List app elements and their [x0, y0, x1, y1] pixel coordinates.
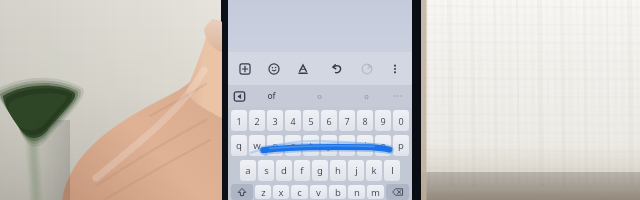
staticText: v [316, 186, 321, 199]
button[interactable]: 0 [393, 110, 409, 131]
staticText: j [355, 164, 358, 177]
button[interactable]: y [321, 135, 337, 156]
button[interactable]: More options [385, 59, 405, 79]
staticText: s [264, 164, 269, 177]
staticText: b [335, 186, 341, 199]
button[interactable]: Undo [327, 59, 347, 79]
staticText: t [309, 139, 313, 152]
button[interactable]: Stickers [264, 59, 284, 79]
button[interactable]: o [343, 85, 390, 107]
staticText: 2 [254, 115, 260, 127]
staticText: n [354, 186, 360, 199]
staticText: x [278, 186, 284, 199]
button[interactable]: Shift [231, 184, 253, 200]
staticText: r [291, 139, 295, 152]
button[interactable]: c [291, 185, 308, 199]
staticText: w [253, 139, 261, 152]
staticText: h [335, 164, 341, 177]
button[interactable]: 4 [285, 110, 301, 131]
button[interactable]: h [330, 160, 346, 181]
button[interactable]: of [246, 85, 296, 107]
button[interactable]: i [357, 135, 373, 156]
button[interactable]: Insert [235, 59, 255, 79]
button[interactable]: w [249, 135, 265, 156]
staticText: z [261, 186, 266, 199]
button[interactable]: j [348, 160, 364, 181]
staticText: 5 [308, 115, 314, 127]
button[interactable]: 3 [267, 110, 283, 131]
button[interactable]: 7 [339, 110, 355, 131]
button[interactable]: l [384, 160, 400, 181]
staticText: u [344, 139, 350, 152]
button[interactable]: a [240, 160, 256, 181]
button[interactable]: f [294, 160, 310, 181]
staticText: p [398, 139, 404, 152]
button[interactable]: n [348, 185, 365, 199]
staticText: y [327, 139, 332, 152]
staticText: l [391, 164, 394, 177]
button[interactable]: v [310, 185, 327, 199]
button[interactable]: 1 [231, 110, 247, 131]
button[interactable]: Backspace [386, 184, 409, 200]
button[interactable]: o [296, 85, 343, 107]
staticText: a [245, 164, 251, 177]
staticText: 6 [326, 115, 332, 127]
staticText: 0 [398, 115, 404, 127]
staticText: o [317, 91, 322, 101]
staticText: m [371, 186, 380, 199]
button[interactable]: 9 [375, 110, 391, 131]
button[interactable]: u [339, 135, 355, 156]
button[interactable]: q [231, 135, 247, 156]
staticText: 8 [362, 115, 368, 127]
staticText: e [272, 139, 278, 152]
button[interactable]: x [273, 185, 289, 199]
staticText: q [236, 139, 242, 152]
button[interactable]: s [258, 160, 274, 181]
button[interactable]: g [312, 160, 328, 181]
staticText: g [317, 164, 323, 177]
staticText: f [300, 164, 304, 177]
staticText: of [267, 90, 276, 102]
staticText: 1 [236, 115, 242, 127]
staticText: k [371, 164, 377, 177]
staticText: c [297, 186, 302, 199]
button[interactable]: 2 [249, 110, 265, 131]
staticText: 4 [290, 115, 296, 127]
button[interactable]: z [255, 185, 271, 199]
button[interactable]: o [375, 135, 391, 156]
button[interactable]: e [267, 135, 283, 156]
staticText: o [380, 139, 386, 152]
button[interactable]: Format text [293, 59, 313, 79]
staticText: d [281, 164, 287, 177]
button[interactable]: 8 [357, 110, 373, 131]
button[interactable]: 5 [303, 110, 319, 131]
button[interactable]: r [285, 135, 301, 156]
button[interactable]: p [393, 135, 409, 156]
staticText: i [364, 139, 367, 152]
button[interactable]: b [329, 185, 346, 199]
staticText: o [364, 91, 369, 101]
staticText: 3 [272, 115, 278, 127]
button[interactable]: More suggestions [390, 85, 406, 107]
button[interactable]: 6 [321, 110, 337, 131]
button[interactable]: k [366, 160, 382, 181]
staticText: 7 [344, 115, 350, 127]
staticText: 9 [380, 115, 386, 127]
button[interactable]: Clipboard [233, 90, 246, 103]
button[interactable]: m [367, 185, 384, 199]
button[interactable]: Redo [357, 59, 377, 79]
button[interactable]: d [276, 160, 292, 181]
button[interactable]: t [303, 135, 319, 156]
